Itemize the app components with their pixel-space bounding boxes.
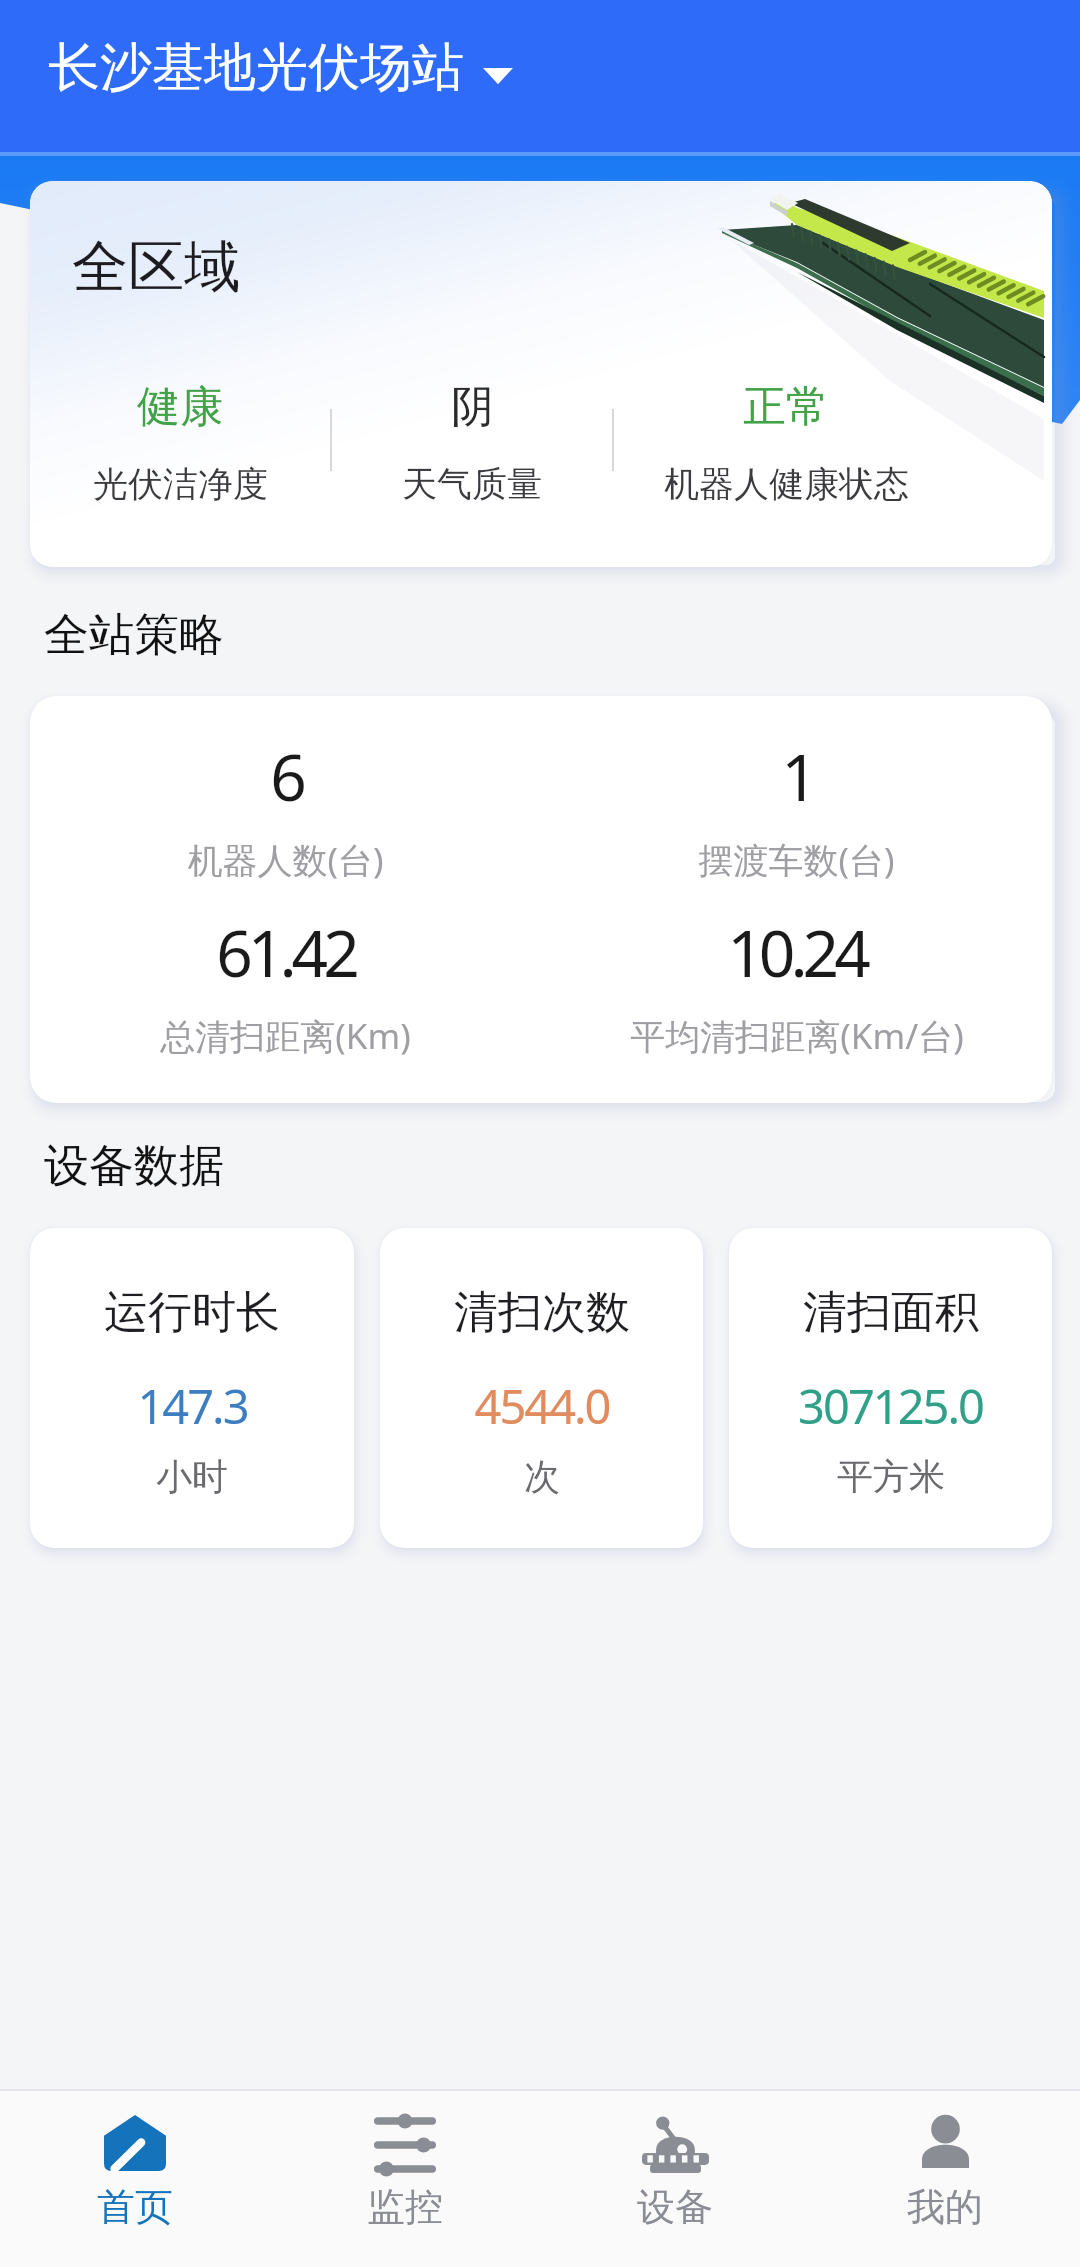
button[interactable]: 长沙基地光伏场站 (0, 19, 533, 117)
staticText: 61.42 (216, 909, 355, 996)
button[interactable]: 6 (30, 696, 1052, 1103)
staticText: 阴 (451, 380, 494, 434)
staticText: 全站策略 (44, 607, 224, 664)
button[interactable]: 全区域 (30, 181, 1052, 567)
staticText: 平均清扫距离(Km/台) (630, 1012, 964, 1060)
button[interactable]: 阴 (332, 380, 612, 510)
staticText: 10.24 (727, 909, 866, 996)
staticText: 监控 (367, 2183, 443, 2231)
staticText: 设备数据 (44, 1138, 224, 1195)
staticText: 总清扫距离(Km) (160, 1012, 411, 1060)
button[interactable]: 健康 (30, 380, 330, 510)
button[interactable]: Monitor (270, 2091, 540, 2267)
staticText: 健康 (137, 380, 223, 434)
staticText: 设备 (637, 2183, 713, 2231)
staticText: 147.3 (137, 1374, 248, 1438)
staticText: 清扫次数 (454, 1285, 630, 1340)
staticText: 运行时长 (104, 1285, 280, 1340)
staticText: 6 (270, 733, 302, 820)
staticText: 机器人健康状态 (664, 462, 909, 506)
staticText: 次 (524, 1454, 560, 1499)
staticText: 机器人数(台) (187, 836, 384, 884)
button[interactable]: 清扫次数 (380, 1228, 703, 1548)
staticText: 全区域 (72, 232, 240, 303)
button[interactable]: Profile (810, 2091, 1080, 2267)
button[interactable]: 运行时长 (30, 1228, 354, 1548)
button[interactable]: Devices (540, 2091, 810, 2267)
staticText: 小时 (156, 1454, 228, 1499)
staticText: 正常 (743, 380, 829, 434)
staticText: 我的 (907, 2183, 983, 2231)
staticText: 平方米 (837, 1454, 945, 1499)
staticText: 摆渡车数(台) (698, 836, 895, 884)
staticText: 光伏洁净度 (93, 462, 268, 506)
staticText: 天气质量 (402, 462, 542, 506)
staticText: 首页 (97, 2183, 173, 2231)
staticText: 4544.0 (474, 1374, 610, 1438)
button[interactable]: 清扫面积 (729, 1228, 1052, 1548)
button[interactable]: 正常 (614, 380, 958, 510)
button[interactable]: Home (0, 2091, 270, 2267)
staticText: 长沙基地光伏场站 (48, 35, 464, 101)
staticText: 清扫面积 (803, 1285, 979, 1340)
staticText: 307125.0 (798, 1374, 983, 1438)
staticText: 1 (781, 733, 813, 820)
